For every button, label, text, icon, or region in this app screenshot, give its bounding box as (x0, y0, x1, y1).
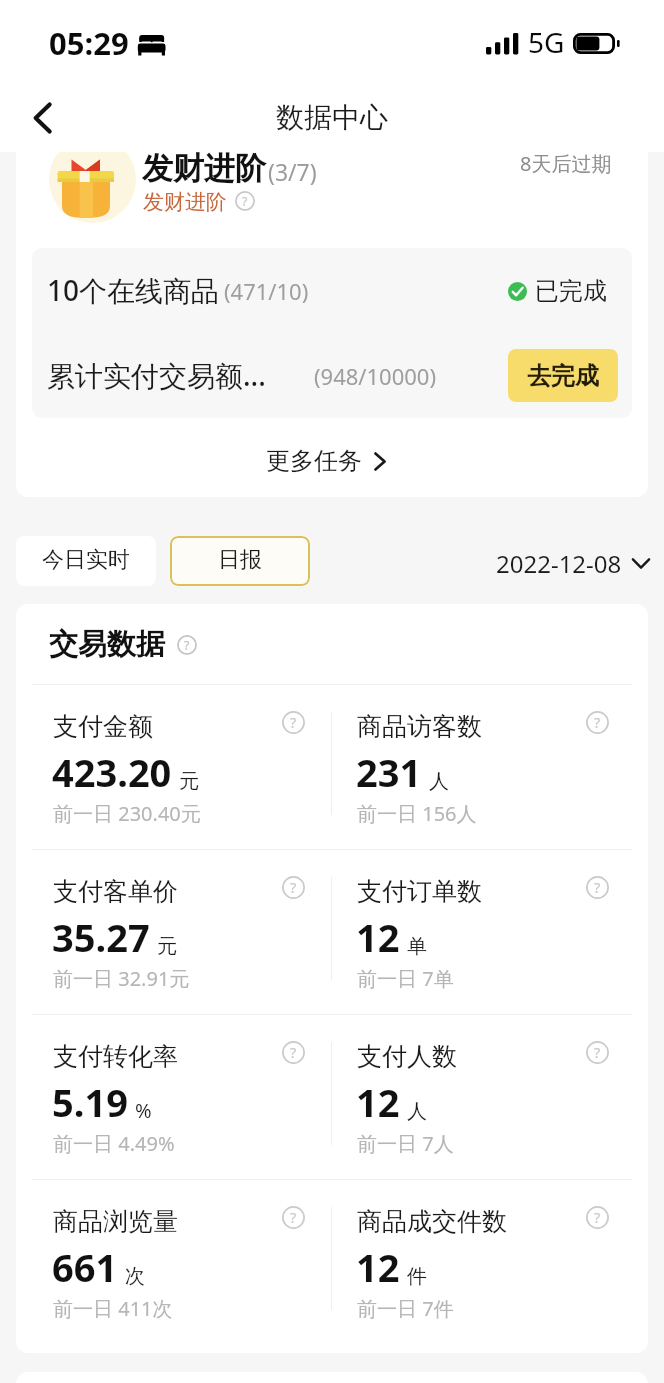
staticText: 支付人数 (357, 1041, 457, 1072)
staticText: ? (594, 713, 601, 732)
staticText: 支付转化率 (53, 1041, 178, 1072)
staticText: 商品成交件数 (357, 1206, 507, 1237)
staticText: 661 (52, 1241, 118, 1293)
button[interactable]: 2022-12-08 (496, 547, 650, 580)
button[interactable]: 商品浏览量 (16, 1180, 331, 1344)
staticText: 元 (157, 934, 177, 959)
staticText: ? (242, 193, 248, 210)
button[interactable]: 10个在线商品 (32, 248, 632, 333)
staticText: 前一日 7单 (357, 965, 454, 992)
button[interactable]: 更多任务 (266, 440, 386, 482)
staticText: (3/7) (268, 156, 317, 187)
button[interactable]: 今日实时 (16, 536, 156, 586)
button[interactable]: 商品访客数 (332, 685, 648, 849)
button[interactable]: 累计实付交易额... (32, 333, 632, 418)
staticText: 次 (125, 1264, 145, 1289)
staticText: 支付金额 (53, 711, 153, 742)
button[interactable]: 支付转化率 (16, 1015, 331, 1179)
staticText: 12 (356, 911, 400, 963)
staticText: 件 (407, 1264, 427, 1289)
staticText: ? (594, 878, 601, 897)
staticText: ? (290, 713, 297, 732)
staticText: 累计实付交易额... (47, 356, 266, 394)
staticText: ? (290, 878, 297, 897)
staticText: % (135, 1097, 152, 1124)
staticText: 日报 (218, 546, 262, 574)
button[interactable]: 支付金额 (16, 685, 331, 849)
button[interactable]: Back (22, 98, 62, 138)
staticText: 前一日 7人 (357, 1130, 454, 1157)
staticText: 数据中心 (276, 100, 388, 135)
staticText: 423.20 (52, 746, 172, 798)
staticText: 去完成 (527, 361, 599, 391)
staticText: 已完成 (535, 276, 607, 306)
button[interactable]: 商品成交件数 (332, 1180, 648, 1344)
staticText: 人 (429, 769, 449, 794)
staticText: 2022-12-08 (496, 547, 622, 580)
staticText: 8天后过期 (520, 150, 612, 177)
staticText: 发财进阶 (142, 149, 266, 188)
button[interactable]: 日报 (170, 536, 310, 586)
staticText: 35.27 (52, 911, 150, 963)
staticText: 交易数据 (49, 626, 165, 663)
staticText: 12 (356, 1076, 400, 1128)
staticText: 前一日 32.91元 (53, 965, 190, 992)
staticText: 前一日 7件 (357, 1295, 454, 1322)
staticText: 10个在线商品 (47, 271, 220, 309)
button[interactable]: 支付客单价 (16, 850, 331, 1014)
staticText: 元 (179, 769, 199, 794)
staticText: 更多任务 (266, 446, 362, 476)
staticText: 商品访客数 (357, 711, 482, 742)
staticText: 12 (356, 1241, 400, 1293)
staticText: 前一日 411次 (53, 1295, 173, 1322)
staticText: 5G (528, 23, 565, 61)
button[interactable]: 支付订单数 (332, 850, 648, 1014)
staticText: 231 (356, 746, 422, 798)
staticText: 5.19 (52, 1076, 128, 1128)
button[interactable]: 去完成 (508, 349, 618, 402)
staticText: 人 (407, 1099, 427, 1124)
staticText: ? (184, 637, 190, 654)
staticText: 前一日 4.49% (53, 1130, 175, 1157)
staticText: (471/10) (224, 276, 309, 306)
staticText: ? (290, 1208, 297, 1227)
button[interactable]: 支付人数 (332, 1015, 648, 1179)
staticText: 发财进阶 (143, 189, 227, 215)
staticText: ? (290, 1043, 297, 1062)
staticText: 单 (407, 934, 427, 959)
staticText: 前一日 230.40元 (53, 800, 201, 827)
staticText: 前一日 156人 (357, 800, 477, 827)
staticText: ? (594, 1043, 601, 1062)
staticText: (948/10000) (314, 361, 437, 391)
staticText: 商品浏览量 (53, 1206, 178, 1237)
staticText: 05:29 (49, 22, 129, 64)
staticText: ? (594, 1208, 601, 1227)
staticText: 支付订单数 (357, 876, 482, 907)
staticText: 支付客单价 (53, 876, 178, 907)
staticText: 今日实时 (42, 546, 130, 574)
